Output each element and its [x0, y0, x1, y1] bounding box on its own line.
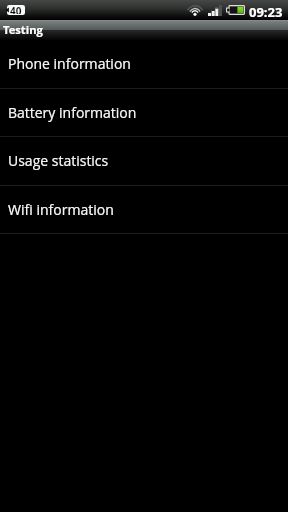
- button[interactable]: Usage statistics: [0, 137, 288, 186]
- staticText: Phone information: [8, 54, 131, 73]
- button[interactable]: Wifi information: [0, 186, 288, 234]
- staticText: 40: [10, 4, 22, 14]
- button[interactable]: Phone information: [0, 40, 288, 89]
- staticText: 09:23: [249, 3, 283, 21]
- staticText: Usage statistics: [8, 151, 109, 170]
- other: Mobile signal: [208, 5, 222, 16]
- other: 40 notifications: [5, 5, 25, 15]
- button[interactable]: Battery information: [0, 89, 288, 137]
- other: Wi-Fi signal: [187, 5, 203, 16]
- staticText: Testing: [3, 22, 43, 37]
- staticText: Battery information: [8, 103, 137, 122]
- other: Battery: [226, 5, 245, 15]
- staticText: Wifi information: [8, 200, 114, 219]
